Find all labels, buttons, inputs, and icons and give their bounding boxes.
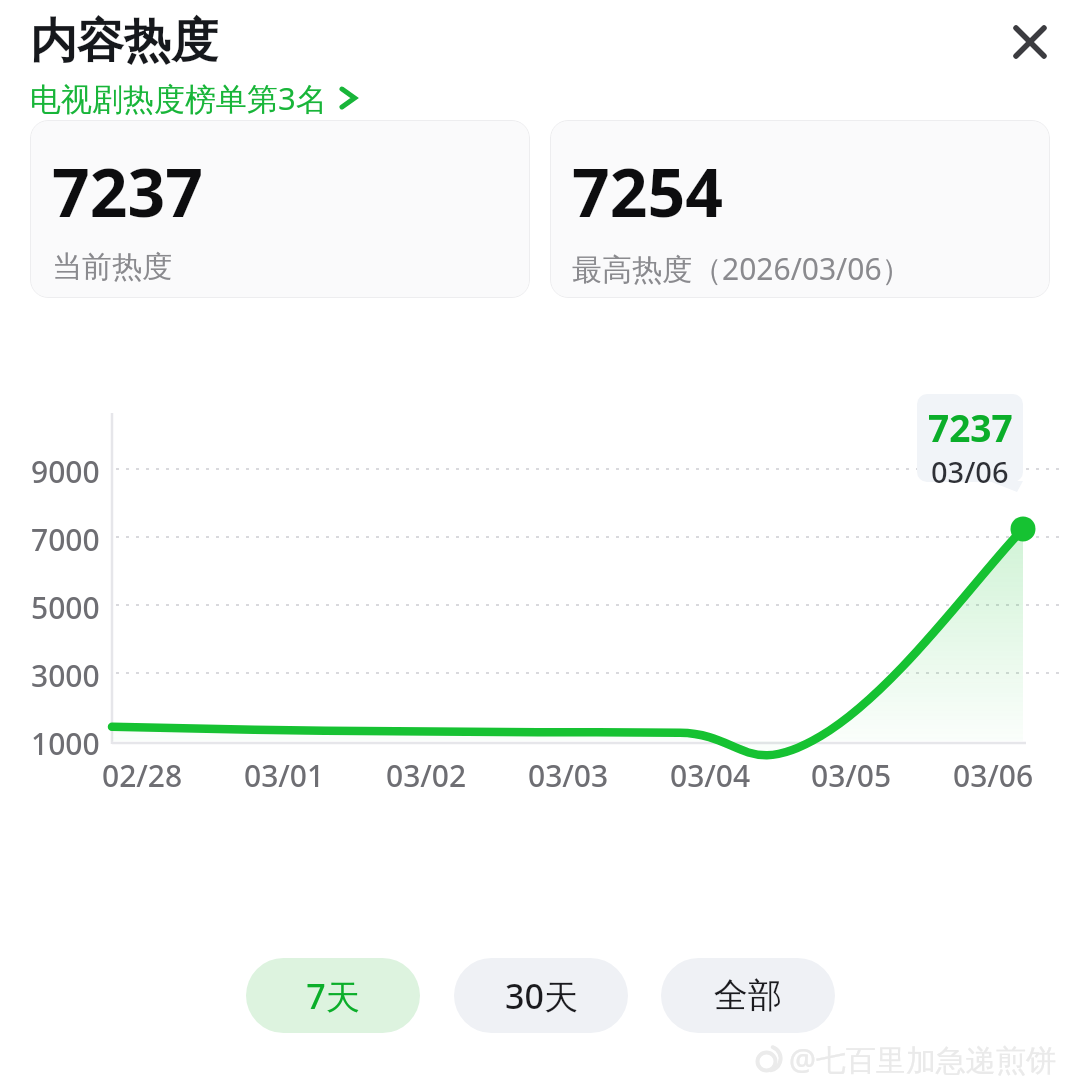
staticText: 7000 — [31, 519, 100, 560]
staticText: 内容热度 — [30, 12, 218, 71]
staticText: 9000 — [31, 451, 100, 492]
staticText: 03/02 — [386, 755, 467, 796]
staticText: 03/04 — [670, 755, 751, 796]
staticText: 02/28 — [102, 755, 183, 796]
button[interactable]: Close — [1002, 14, 1058, 70]
staticText: 03/01 — [244, 755, 325, 796]
staticText: 7237 — [928, 402, 1013, 452]
staticText: 7254 — [572, 146, 724, 236]
staticText: 全部 — [714, 974, 782, 1017]
button[interactable]: 全部 — [661, 958, 835, 1033]
button[interactable]: 7237 — [30, 120, 530, 298]
staticText: 最高热度（2026/03/06） — [572, 248, 912, 289]
staticText: 30天 — [505, 973, 578, 1019]
staticText: @七百里加急递煎饼 — [789, 1039, 1056, 1080]
staticText: 03/03 — [528, 755, 609, 796]
staticText: 03/06 — [953, 755, 1034, 796]
button[interactable]: 7天 — [246, 958, 420, 1033]
staticText: 3000 — [31, 655, 100, 696]
button[interactable]: 30天 — [454, 958, 628, 1033]
staticText: 7237 — [52, 146, 204, 236]
staticText: 03/06 — [931, 452, 1009, 491]
staticText: 7天 — [306, 973, 360, 1019]
staticText: 当前热度 — [52, 248, 172, 286]
staticText: 1000 — [31, 723, 100, 764]
staticText: 03/05 — [811, 755, 892, 796]
staticText: 5000 — [31, 587, 100, 628]
button[interactable]: 电视剧热度榜单第3名 — [30, 77, 359, 119]
button[interactable]: 7254 — [550, 120, 1050, 298]
staticText: 电视剧热度榜单第3名 — [30, 77, 327, 119]
